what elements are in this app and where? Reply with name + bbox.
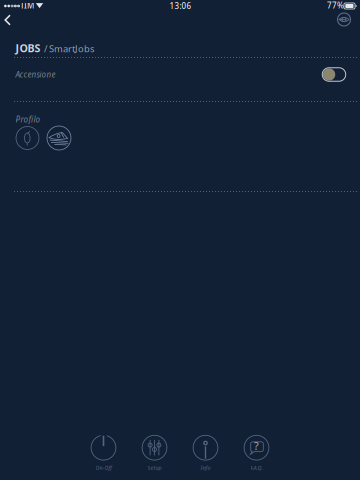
button[interactable]: ?	[231, 434, 282, 472]
button[interactable]: On-Off	[78, 434, 129, 472]
button[interactable]: Profilo B	[45, 124, 73, 152]
staticText: ?	[254, 439, 259, 453]
staticText: 77%	[327, 0, 344, 11]
staticText: JOBS	[15, 41, 40, 55]
staticText: / SmartJobs	[44, 42, 94, 55]
staticText: On-Off	[95, 464, 111, 471]
staticText: 13:06	[169, 1, 191, 11]
button[interactable]: Info	[180, 434, 231, 472]
staticText: Info	[200, 464, 210, 471]
staticText: Setup	[147, 464, 161, 471]
button[interactable]: Preview	[331, 6, 357, 32]
button[interactable]: Setup	[129, 434, 180, 472]
staticText: F.A.Q.	[250, 464, 262, 471]
button[interactable]: Profilo A	[14, 124, 41, 151]
staticText: TIM	[20, 0, 34, 11]
staticText: Accensione	[15, 69, 55, 80]
staticText: Profilo	[15, 114, 40, 125]
button[interactable]: Back	[0, 6, 24, 34]
button[interactable]: Accensione	[318, 64, 350, 85]
